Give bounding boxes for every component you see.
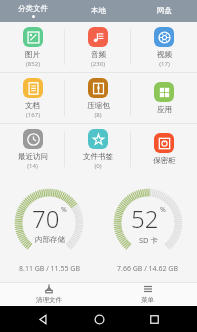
staticText: 70 [32, 202, 60, 235]
button[interactable]: 文档 [0, 73, 65, 123]
staticText: 本地 [91, 6, 106, 15]
staticText: (0) [94, 162, 102, 170]
button[interactable]: 保密柜 [131, 124, 197, 174]
staticText: (230) [91, 60, 105, 68]
button[interactable]: 最近访问 [0, 124, 65, 174]
staticText: 文件书签 [83, 152, 113, 161]
staticText: 52 [131, 202, 159, 235]
button[interactable]: 文件书签 [65, 124, 131, 174]
staticText: (8) [94, 111, 102, 119]
staticText: (17) [159, 60, 170, 68]
staticText: 音频 [91, 50, 106, 59]
button[interactable]: 菜单 [98, 282, 197, 306]
button[interactable]: 音频 [65, 22, 131, 72]
staticText: 视频 [157, 50, 172, 59]
staticText: 保密柜 [153, 156, 176, 165]
button[interactable]: 分类文件 [0, 0, 65, 22]
staticText: 应用 [157, 105, 172, 114]
button[interactable]: 清理文件 [0, 282, 98, 306]
staticText: SD 卡 [139, 235, 159, 245]
staticText: 7.66 GB / 14.62 GB [117, 264, 178, 274]
staticText: 网盘 [157, 6, 172, 15]
staticText: 图片 [25, 50, 40, 59]
staticText: 压缩包 [87, 101, 110, 110]
button[interactable]: 视频 [131, 22, 197, 72]
button[interactable]: 网盘 [131, 0, 197, 22]
button[interactable]: 应用 [131, 73, 197, 123]
button[interactable]: 52 [98, 187, 197, 274]
staticText: (14) [27, 162, 38, 170]
button[interactable]: 压缩包 [65, 73, 131, 123]
staticText: (852) [26, 60, 40, 68]
button[interactable]: Recent apps [141, 306, 167, 332]
button[interactable]: Back [30, 306, 56, 332]
button[interactable]: 70 [0, 187, 98, 274]
staticText: 菜单 [141, 296, 154, 304]
staticText: (167) [26, 111, 40, 119]
button[interactable]: Home [86, 306, 112, 332]
staticText: 8.11 GB / 11.55 GB [19, 264, 80, 274]
button[interactable]: 图片 [0, 22, 65, 72]
staticText: 最近访问 [18, 152, 48, 161]
staticText: % [160, 205, 166, 215]
staticText: 内部存储 [35, 235, 65, 244]
staticText: % [61, 205, 67, 215]
button[interactable]: 本地 [65, 0, 131, 22]
staticText: 分类文件 [18, 4, 48, 13]
staticText: 清理文件 [36, 296, 62, 304]
staticText: 文档 [25, 101, 40, 110]
